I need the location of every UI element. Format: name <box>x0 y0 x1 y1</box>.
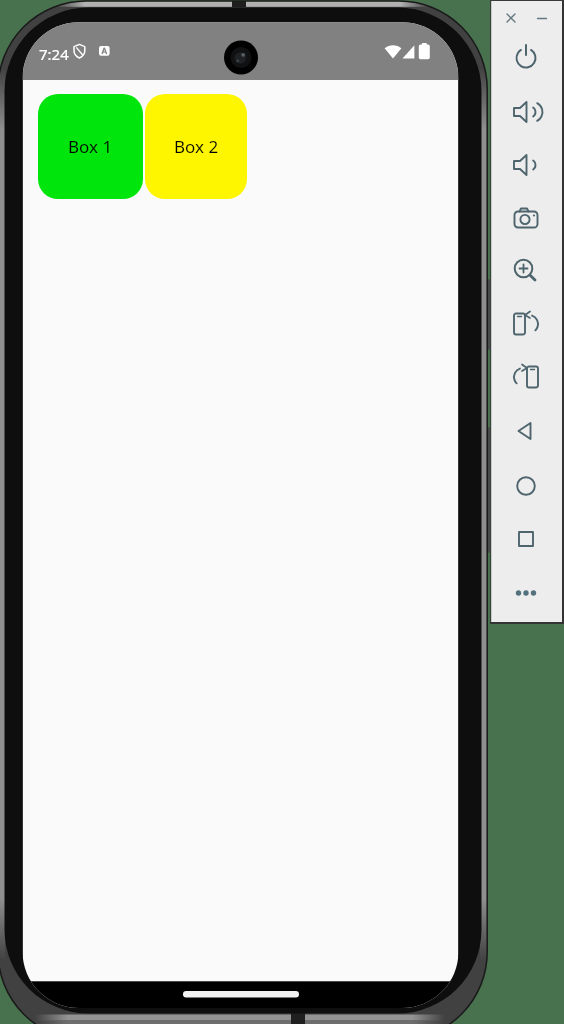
button[interactable] <box>506 38 546 78</box>
button[interactable] <box>506 357 546 397</box>
button[interactable]: Box 2 <box>145 94 247 199</box>
button[interactable] <box>500 7 522 29</box>
staticText: 7:24 <box>39 44 69 64</box>
button[interactable]: Box 1 <box>38 94 143 199</box>
button[interactable] <box>506 251 546 291</box>
button[interactable] <box>506 466 546 506</box>
button[interactable] <box>506 199 546 239</box>
button[interactable] <box>506 519 546 559</box>
button[interactable] <box>506 92 546 132</box>
staticText: Box 2 <box>174 135 219 158</box>
button[interactable] <box>506 573 546 613</box>
button[interactable] <box>506 145 546 185</box>
button[interactable] <box>506 411 546 451</box>
button[interactable] <box>506 304 546 344</box>
button[interactable] <box>531 7 553 29</box>
staticText: Box 1 <box>68 135 113 158</box>
